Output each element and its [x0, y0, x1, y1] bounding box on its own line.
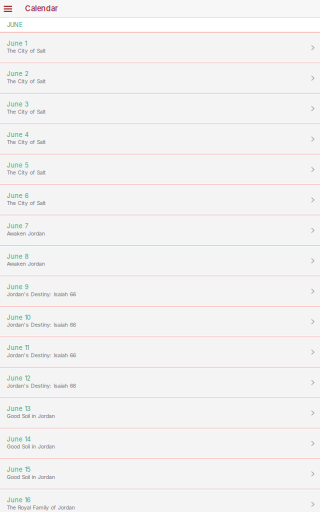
- staticText: Jordan's Destiny: Isaiah 66: [7, 321, 76, 328]
- staticText: June 8: [7, 253, 29, 260]
- staticText: The City of Salt: [7, 169, 46, 176]
- staticText: June 4: [7, 131, 29, 138]
- staticText: Good Soil in Jordan: [7, 413, 55, 419]
- button[interactable]: June 9: [0, 277, 320, 305]
- staticText: Awaken Jordan: [7, 261, 45, 267]
- staticText: The City of Salt: [7, 48, 46, 54]
- button[interactable]: June 16: [0, 491, 320, 512]
- staticText: June 16: [7, 496, 31, 504]
- staticText: June 3: [7, 101, 29, 108]
- staticText: The City of Salt: [7, 200, 46, 206]
- staticText: Jordan's Destiny: Isaiah 66: [7, 382, 76, 389]
- staticText: Jordan's Destiny: Isaiah 66: [7, 352, 76, 358]
- staticText: June 13: [7, 405, 31, 412]
- staticText: June 1: [7, 40, 27, 47]
- staticText: Awaken Jordan: [7, 230, 45, 237]
- button[interactable]: June 12: [0, 369, 320, 396]
- button[interactable]: June 10: [0, 308, 320, 335]
- staticText: Calendar: [25, 4, 58, 13]
- button[interactable]: June 4: [0, 125, 320, 153]
- staticText: Good Soil in Jordan: [7, 443, 55, 450]
- staticText: June 14: [7, 435, 31, 443]
- staticText: The City of Salt: [7, 78, 46, 84]
- staticText: June 10: [7, 314, 31, 321]
- button[interactable]: June 6: [0, 186, 320, 214]
- staticText: JUNE: [7, 21, 23, 28]
- staticText: June 12: [7, 375, 31, 382]
- button[interactable]: June 3: [0, 95, 320, 122]
- button[interactable]: June 13: [0, 399, 320, 427]
- staticText: June 7: [7, 222, 28, 230]
- button[interactable]: June 1: [0, 34, 320, 61]
- button[interactable]: June 14: [0, 430, 320, 457]
- staticText: The Royal Family of Jordan: [7, 504, 75, 511]
- staticText: June 15: [7, 466, 31, 473]
- button[interactable]: June 15: [0, 460, 320, 488]
- button[interactable]: June 11: [0, 338, 320, 366]
- button[interactable]: June 2: [0, 64, 320, 92]
- staticText: The City of Salt: [7, 108, 46, 115]
- button[interactable]: June 8: [0, 247, 320, 274]
- staticText: June 2: [7, 70, 29, 78]
- staticText: The City of Salt: [7, 139, 46, 145]
- button[interactable]: June 5: [0, 156, 320, 183]
- staticText: June 9: [7, 283, 29, 291]
- staticText: Good Soil in Jordan: [7, 474, 55, 480]
- button[interactable]: Menu: [0, 0, 12, 17]
- staticText: June 11: [7, 344, 29, 351]
- staticText: June 5: [7, 161, 29, 169]
- button[interactable]: June 7: [0, 217, 320, 244]
- staticText: June 6: [7, 192, 29, 199]
- staticText: Jordan's Destiny: Isaiah 66: [7, 291, 76, 298]
